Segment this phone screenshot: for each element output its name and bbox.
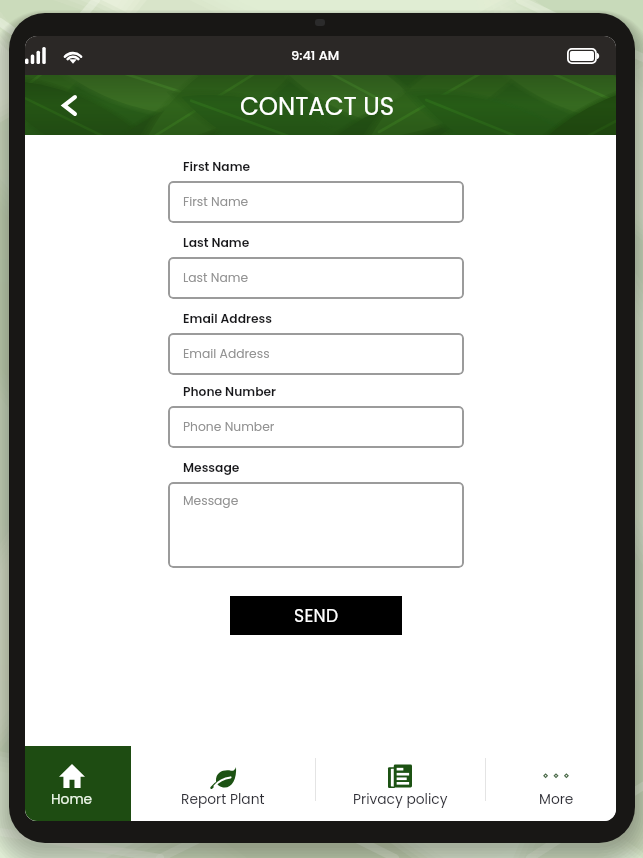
staticText: Email Address — [183, 310, 272, 327]
staticText: More — [539, 790, 574, 809]
staticText: Email Address — [183, 345, 270, 362]
button[interactable]: Last Name — [168, 257, 464, 299]
staticText: Report Plant — [181, 790, 265, 809]
staticText: Message — [183, 492, 239, 509]
button[interactable]: Email Address — [168, 333, 464, 375]
button[interactable]: Home — [25, 746, 124, 821]
staticText: Last Name — [183, 234, 250, 251]
button[interactable]: Message — [168, 482, 464, 568]
button[interactable]: SEND — [230, 596, 402, 635]
staticText: Phone Number — [183, 383, 277, 400]
staticText: 9:41 AM — [291, 46, 340, 64]
button[interactable]: Report Plant — [171, 746, 275, 821]
button[interactable]: Privacy policy — [348, 746, 452, 821]
staticText: First Name — [183, 193, 249, 210]
staticText: Phone Number — [183, 418, 275, 435]
button[interactable] — [25, 746, 131, 821]
staticText: Last Name — [183, 269, 249, 286]
button[interactable]: Back — [45, 81, 93, 129]
button[interactable]: First Name — [168, 181, 464, 223]
button[interactable]: More — [504, 746, 608, 821]
staticText: Home — [51, 790, 93, 809]
staticText: First Name — [183, 158, 251, 175]
button[interactable]: Phone Number — [168, 406, 464, 448]
staticText: Privacy policy — [353, 790, 448, 809]
staticText: SEND — [294, 604, 339, 628]
staticText: CONTACT US — [240, 89, 395, 123]
staticText: Message — [183, 459, 240, 476]
